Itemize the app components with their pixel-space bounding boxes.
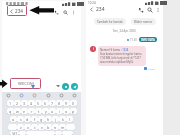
button[interactable]: Tambah ke kontak — [97, 18, 123, 25]
button[interactable]: Camera — [62, 83, 69, 90]
button[interactable]: v — [38, 124, 45, 130]
button[interactable]: g — [38, 116, 45, 122]
button[interactable]: Keyboard tool — [72, 93, 77, 98]
staticText: 2 — [16, 101, 19, 106]
staticText: s — [20, 117, 22, 122]
button[interactable]: . — [55, 131, 62, 135]
button[interactable]: Call — [52, 8, 60, 16]
staticText: m — [61, 125, 65, 130]
button[interactable]: x — [24, 124, 31, 130]
button[interactable]: 0 — [70, 100, 77, 106]
button[interactable]: z — [17, 124, 24, 130]
button[interactable]: More options — [70, 9, 76, 15]
button[interactable]: Search — [146, 6, 154, 14]
staticText: w — [16, 109, 19, 114]
staticText: Blokir nomor — [134, 20, 153, 24]
button[interactable]: 1 — [7, 100, 14, 106]
button[interactable]: Search — [61, 8, 69, 16]
button[interactable]: 6 — [42, 100, 49, 106]
button[interactable]: n — [52, 124, 59, 130]
button[interactable]: u — [49, 108, 56, 114]
button[interactable]: Keyboard tool — [32, 93, 37, 98]
button[interactable]: p — [70, 108, 77, 114]
staticText: 4 — [30, 101, 33, 106]
button[interactable]: WECOM — [10, 78, 41, 89]
staticText: 6 — [44, 101, 47, 106]
staticText: k — [62, 117, 64, 122]
staticText: f — [34, 117, 36, 122]
button[interactable]: 5 — [35, 100, 42, 106]
button[interactable]: w — [14, 108, 21, 114]
staticText: d — [26, 117, 29, 122]
button[interactable]: Space — [26, 131, 55, 135]
button[interactable]: l — [66, 116, 73, 122]
button[interactable]: Backspace — [66, 124, 75, 130]
button[interactable]: Call — [137, 6, 145, 14]
button[interactable]: 3 — [21, 100, 28, 106]
button[interactable]: m — [59, 124, 66, 130]
staticText: p — [72, 109, 75, 114]
button[interactable]: 9 — [63, 100, 70, 106]
button[interactable]: 2 — [14, 100, 21, 106]
button[interactable]: k — [59, 116, 66, 122]
button[interactable]: Enter — [62, 131, 73, 135]
staticText: 8 — [58, 101, 61, 106]
button[interactable]: 7 — [49, 100, 56, 106]
button[interactable]: 4 — [28, 100, 35, 106]
button[interactable]: y — [42, 108, 49, 114]
staticText: i — [93, 47, 94, 51]
staticText: l — [69, 117, 70, 122]
button[interactable]: Symbols — [10, 131, 19, 135]
staticText: i — [59, 109, 60, 114]
button[interactable]: q — [7, 108, 14, 114]
button[interactable]: Keyboard tool — [6, 93, 11, 98]
staticText: . — [58, 131, 59, 135]
button[interactable]: s — [17, 116, 24, 122]
button[interactable]: Back — [88, 6, 95, 13]
staticText: r — [31, 109, 33, 114]
button[interactable]: Attach — [55, 83, 61, 89]
button[interactable]: i — [56, 108, 63, 114]
button[interactable]: More options — [155, 7, 161, 13]
staticText: 234 — [96, 6, 105, 13]
button[interactable]: a — [10, 116, 17, 122]
button[interactable]: Keyboard tool — [19, 93, 24, 98]
button[interactable]: d — [24, 116, 31, 122]
staticText: q — [9, 109, 12, 114]
staticText: n — [54, 125, 57, 130]
staticText: 3 — [23, 101, 26, 106]
button[interactable]: j — [52, 116, 59, 122]
button[interactable]: Shift — [8, 124, 17, 130]
button[interactable]: , — [19, 131, 26, 135]
staticText: WECOM — [18, 81, 34, 87]
button[interactable]: Keyboard tool — [59, 93, 64, 98]
staticText: g — [40, 117, 43, 122]
staticText: y — [45, 109, 47, 114]
button[interactable]: Nomor Hi kamu : 1234 Sisa kuota internet… — [100, 48, 144, 64]
button[interactable]: 8 — [56, 100, 63, 106]
staticText: b — [47, 125, 50, 130]
button[interactable]: 234 — [7, 5, 27, 16]
staticText: 17.53 — [148, 67, 155, 70]
button[interactable]: c — [31, 124, 38, 130]
button[interactable]: INFO DATA — [141, 37, 155, 42]
button[interactable]: e — [21, 108, 28, 114]
staticText: a — [12, 117, 15, 122]
button[interactable]: Blokir nomor — [134, 18, 153, 25]
button[interactable]: o — [63, 108, 70, 114]
staticText: t — [38, 109, 40, 114]
button[interactable]: r — [28, 108, 35, 114]
button[interactable]: Keyboard tool — [46, 93, 51, 98]
button[interactable]: t — [35, 108, 42, 114]
staticText: 234 — [15, 8, 23, 14]
staticText: 17.50 — [130, 38, 137, 42]
button[interactable]: h — [45, 116, 52, 122]
staticText: o — [65, 109, 68, 114]
button[interactable]: b — [45, 124, 52, 130]
staticText: j — [55, 117, 56, 122]
button[interactable]: f — [31, 116, 38, 122]
staticText: Tambah ke kontak — [97, 20, 123, 24]
staticText: h — [47, 117, 50, 122]
button[interactable]: Send — [71, 83, 78, 90]
